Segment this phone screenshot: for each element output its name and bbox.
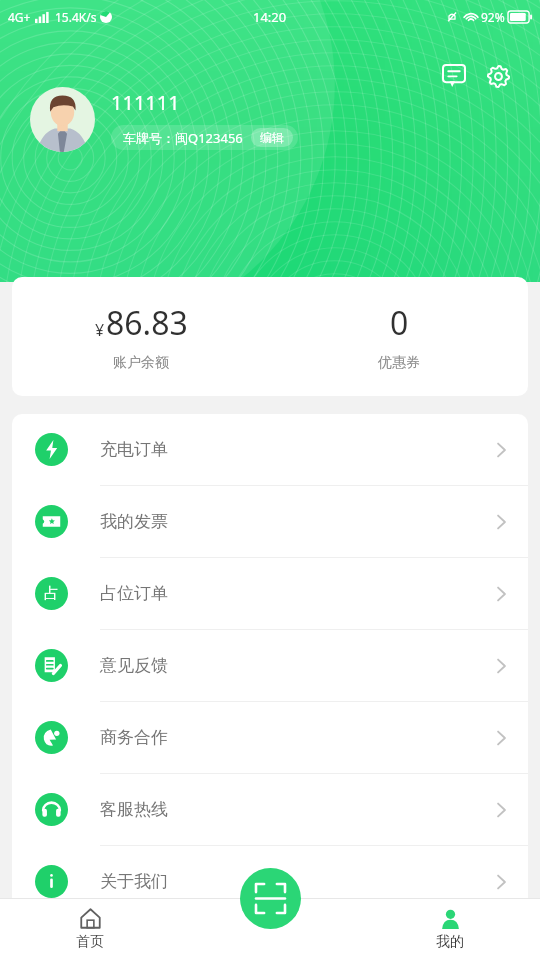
button[interactable]: 关于我们 — [12, 846, 528, 917]
staticText: 充电订单 — [100, 439, 168, 460]
button[interactable]: Profile photo — [30, 87, 95, 152]
button[interactable]: 车牌号：闽Q123456 — [111, 125, 298, 150]
staticText: 关于我们 — [100, 871, 168, 892]
button[interactable]: Messages — [434, 56, 474, 96]
button[interactable]: 我的 — [360, 898, 540, 960]
button[interactable]: Settings — [478, 56, 518, 96]
staticText: 商务合作 — [100, 727, 168, 748]
staticText: 4G+ — [8, 9, 31, 25]
staticText: 92% — [481, 9, 505, 25]
staticText: ¥ — [95, 319, 105, 341]
button[interactable]: 客服热线 — [12, 774, 528, 845]
staticText: 15.4K/s — [55, 9, 97, 25]
staticText: 我的发票 — [100, 511, 168, 532]
button[interactable]: 意见反馈 — [12, 630, 528, 701]
button[interactable]: ¥ — [12, 277, 270, 396]
button[interactable]: 充电订单 — [12, 414, 528, 485]
staticText: 意见反馈 — [100, 655, 168, 676]
staticText: 客服热线 — [100, 799, 168, 820]
staticText: 14:20 — [253, 8, 287, 26]
staticText: 首页 — [76, 933, 104, 951]
staticText: 86.83 — [106, 301, 188, 345]
staticText: 优惠券 — [378, 354, 420, 372]
button[interactable]: 商务合作 — [12, 702, 528, 773]
staticText: 编辑 — [260, 130, 284, 145]
button[interactable]: 占 — [12, 558, 528, 629]
button[interactable]: 我的发票 — [12, 486, 528, 557]
staticText: 占位订单 — [100, 583, 168, 604]
button[interactable]: Scan — [240, 868, 301, 929]
button[interactable]: 0 — [270, 277, 528, 396]
staticText: 占 — [44, 584, 59, 603]
button[interactable]: 首页 — [0, 898, 180, 960]
staticText: 0 — [390, 301, 409, 345]
staticText: 车牌号：闽Q123456 — [123, 129, 243, 147]
staticText: 111111 — [111, 89, 180, 116]
staticText: 我的 — [436, 933, 464, 951]
staticText: 账户余额 — [113, 354, 169, 372]
button[interactable]: 编辑 — [251, 128, 293, 147]
